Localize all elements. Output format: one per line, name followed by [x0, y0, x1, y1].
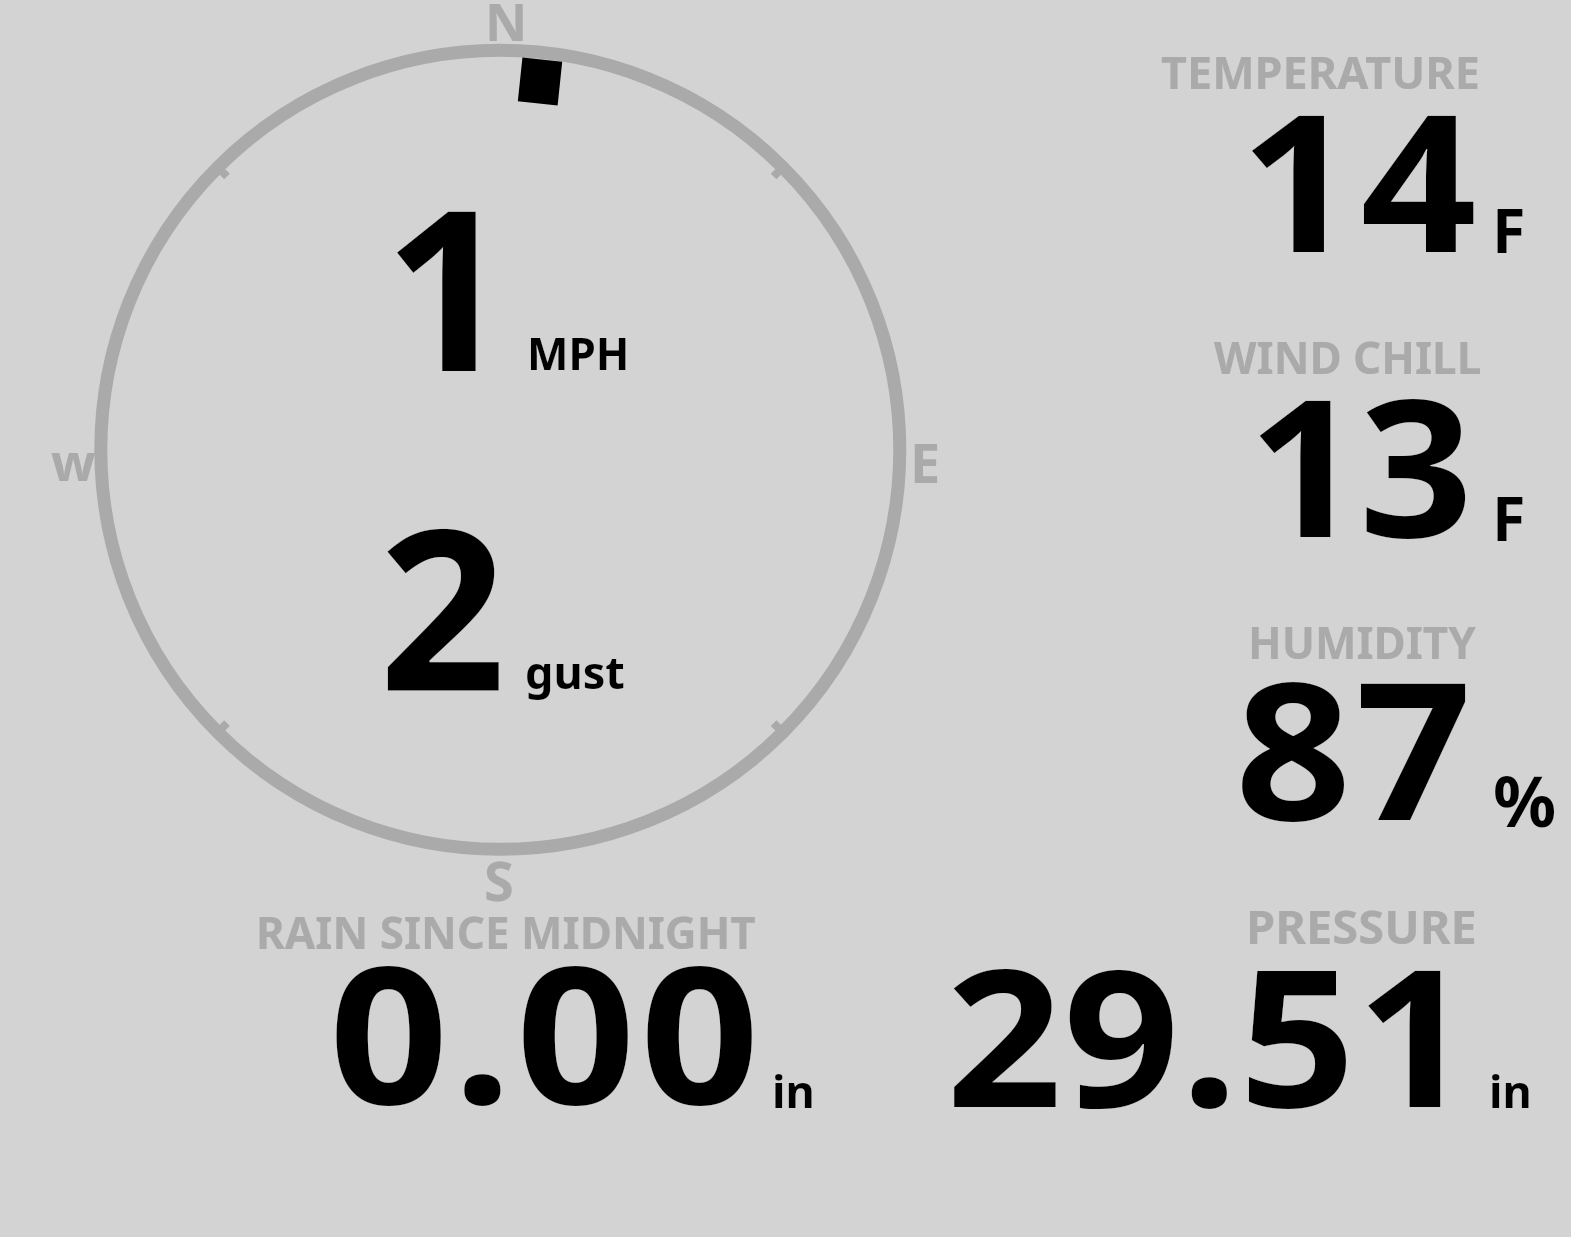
staticText: N: [485, 0, 528, 56]
button[interactable]: [1100, 30, 1571, 280]
button[interactable]: [240, 885, 840, 1125]
staticText: gust: [525, 641, 625, 702]
staticText: w: [51, 425, 96, 496]
button[interactable]: [1100, 600, 1571, 850]
staticText: in: [772, 1060, 815, 1121]
staticText: 29.51: [946, 904, 1475, 1163]
staticText: %: [1493, 752, 1557, 847]
staticText: 14: [1240, 49, 1482, 308]
staticText: 0.00: [329, 901, 765, 1160]
staticText: E: [910, 425, 941, 499]
button[interactable]: [1100, 315, 1571, 565]
button[interactable]: Wind direction compass: [80, 28, 924, 872]
staticText: F: [1492, 188, 1526, 271]
staticText: PRESSURE: [1246, 894, 1477, 958]
staticText: WIND CHILL: [1214, 327, 1482, 387]
staticText: in: [1489, 1060, 1532, 1121]
staticText: 87: [1235, 617, 1477, 876]
staticText: S: [484, 843, 514, 917]
staticText: 13: [1248, 334, 1471, 593]
staticText: HUMIDITY: [1248, 612, 1476, 672]
staticText: MPH: [527, 323, 630, 383]
button[interactable]: [930, 885, 1560, 1125]
staticText: RAIN SINCE MIDNIGHT: [256, 902, 756, 962]
staticText: 1: [384, 134, 511, 436]
staticText: F: [1492, 476, 1526, 559]
staticText: 2: [379, 453, 506, 755]
staticText: TEMPERATURE: [1161, 41, 1480, 102]
